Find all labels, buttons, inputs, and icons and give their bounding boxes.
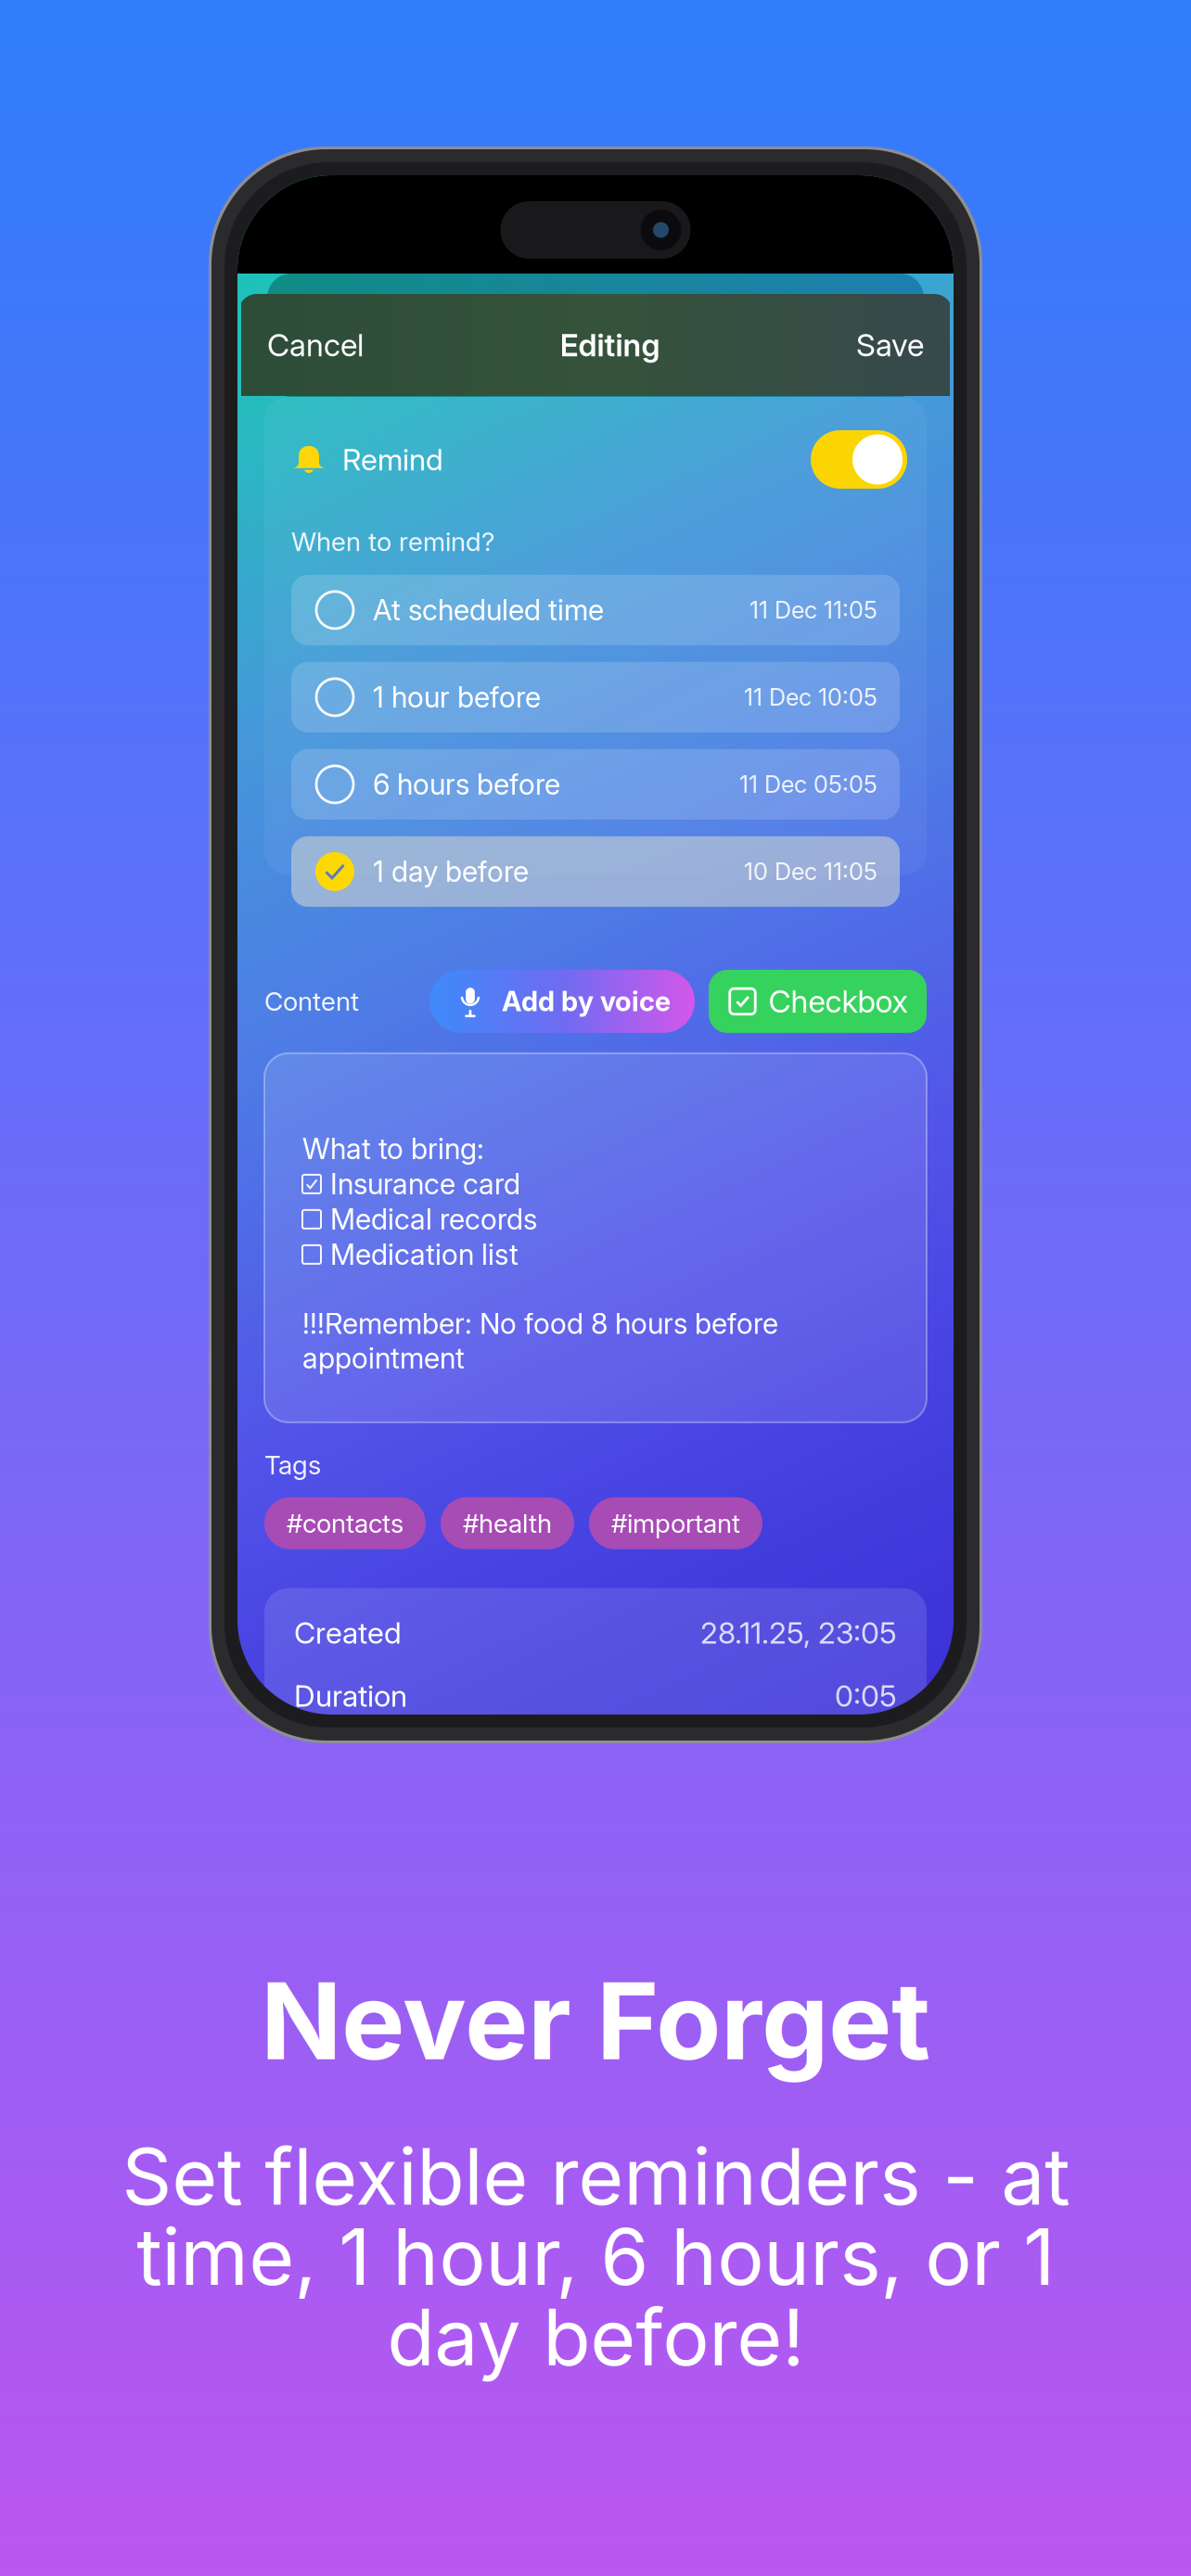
staticText: Cancel: [267, 326, 364, 364]
staticText: Editing: [560, 326, 660, 364]
staticText: Remind: [342, 441, 443, 477]
staticText: Insurance card: [330, 1167, 520, 1201]
button[interactable]: Checkbox: [709, 970, 927, 1033]
staticText: 1 day before: [373, 854, 529, 889]
staticText: Medication list: [330, 1237, 519, 1272]
staticText: What to bring:: [302, 1132, 484, 1166]
staticText: Checkbox: [768, 983, 908, 1020]
button[interactable]: 1 hour before: [291, 662, 900, 732]
button[interactable]: Save: [856, 326, 924, 364]
staticText: Never Forget: [261, 1956, 930, 2085]
staticText: 11 Dec 05:05: [739, 770, 877, 799]
staticText: Content: [264, 986, 359, 1017]
button[interactable]: Cancel: [267, 326, 364, 364]
staticText: Add by voice: [502, 985, 671, 1018]
button[interactable]: 1 day before: [291, 836, 900, 907]
staticText: 11 Dec 10:05: [744, 683, 877, 712]
staticText: Set flexible reminders - at time, 1 hour…: [122, 2129, 1069, 2384]
staticText: Created: [294, 1615, 402, 1651]
button[interactable]: 6 hours before: [291, 749, 900, 820]
staticText: 0:05: [835, 1678, 897, 1714]
staticText: 10 Dec 11:05: [744, 857, 877, 886]
button[interactable]: Add by voice: [429, 970, 695, 1033]
staticText: Medical records: [330, 1202, 537, 1236]
staticText: #contacts: [287, 1508, 403, 1539]
staticText: Duration: [294, 1678, 407, 1714]
staticText: !!!Remember: No food 8 hours before appo…: [302, 1306, 778, 1375]
button[interactable]: Remind toggle: [811, 430, 907, 489]
staticText: 28.11.25, 23:05: [700, 1615, 897, 1651]
button[interactable]: At scheduled time: [291, 575, 900, 645]
staticText: 6 hours before: [373, 767, 560, 802]
button[interactable]: #contacts: [264, 1497, 426, 1549]
staticText: Tags: [264, 1449, 321, 1481]
staticText: #important: [611, 1508, 740, 1539]
button[interactable]: #health: [441, 1497, 574, 1549]
button[interactable]: #important: [589, 1497, 762, 1549]
staticText: When to remind?: [291, 526, 494, 557]
staticText: At scheduled time: [373, 593, 604, 627]
staticText: #health: [463, 1508, 552, 1539]
staticText: Save: [856, 326, 924, 364]
staticText: 11 Dec 11:05: [749, 596, 877, 624]
staticText: 1 hour before: [373, 680, 541, 714]
